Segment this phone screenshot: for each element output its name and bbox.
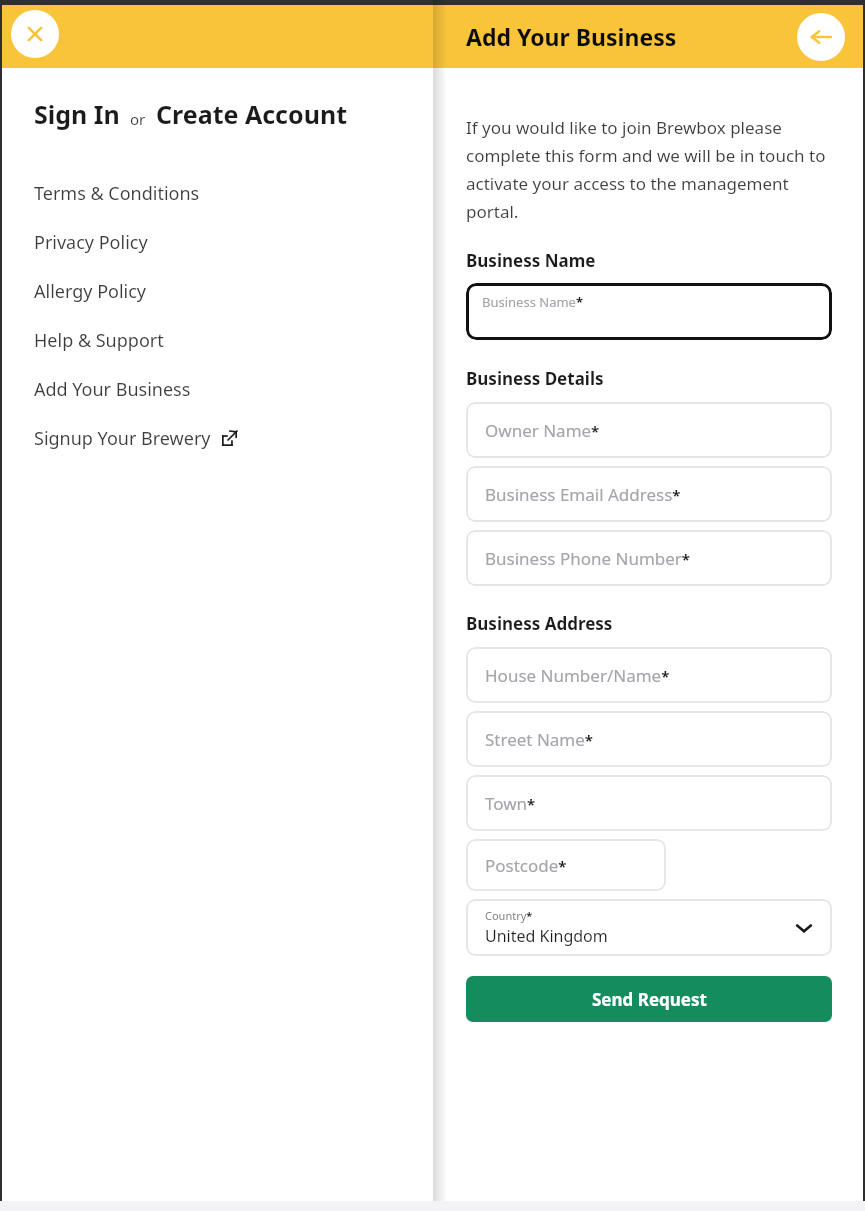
button[interactable]: Owner Name*	[466, 402, 832, 458]
staticText: Town*	[485, 792, 536, 815]
staticText: Business Phone Number*	[485, 547, 690, 570]
staticText: Business Name	[466, 249, 596, 272]
staticText: Business Email Address*	[485, 483, 681, 506]
button[interactable]: Sign In	[34, 95, 120, 133]
staticText: Business Address	[466, 612, 613, 635]
button[interactable]: Allergy Policy	[0, 268, 433, 315]
button[interactable]: Help & Support	[0, 317, 433, 364]
staticText: Terms & Conditions	[34, 181, 200, 206]
staticText: Allergy Policy	[34, 279, 147, 304]
button[interactable]: Create Account	[156, 95, 347, 133]
staticText: Add Your Business	[466, 21, 677, 52]
button[interactable]: Town*	[466, 775, 832, 831]
button[interactable]: Street Name*	[466, 711, 832, 767]
staticText: Business Name*	[482, 293, 583, 311]
staticText: Owner Name*	[485, 419, 600, 442]
button[interactable]: Add Your Business	[0, 366, 433, 413]
staticText: If you would like to join Brewbox please…	[466, 116, 832, 223]
button[interactable]: House Number/Name*	[466, 647, 832, 703]
button[interactable]: Business Name*	[466, 283, 832, 340]
button[interactable]: Country*	[466, 899, 832, 956]
staticText: Add Your Business	[34, 377, 191, 402]
button[interactable]: Postcode*	[466, 839, 666, 891]
staticText: or	[130, 109, 146, 129]
button[interactable]: Send Request	[466, 976, 832, 1022]
button[interactable]: Business Phone Number*	[466, 530, 832, 586]
button[interactable]: Terms & Conditions	[0, 170, 433, 217]
button[interactable]: Close	[11, 10, 59, 58]
staticText: Country*	[485, 908, 533, 923]
staticText: Street Name*	[485, 728, 593, 751]
button[interactable]: Business Email Address*	[466, 466, 832, 522]
staticText: House Number/Name*	[485, 664, 670, 687]
staticText: Help & Support	[34, 328, 164, 353]
staticText: Send Request	[592, 988, 707, 1011]
staticText: Privacy Policy	[34, 230, 148, 255]
staticText: United Kingdom	[485, 925, 608, 947]
staticText: Signup Your Brewery	[34, 426, 211, 451]
button[interactable]: Signup Your Brewery	[0, 415, 433, 462]
button[interactable]: Privacy Policy	[0, 219, 433, 266]
staticText: Business Details	[466, 367, 604, 390]
staticText: Postcode*	[485, 854, 567, 877]
button[interactable]: Back	[797, 13, 845, 61]
